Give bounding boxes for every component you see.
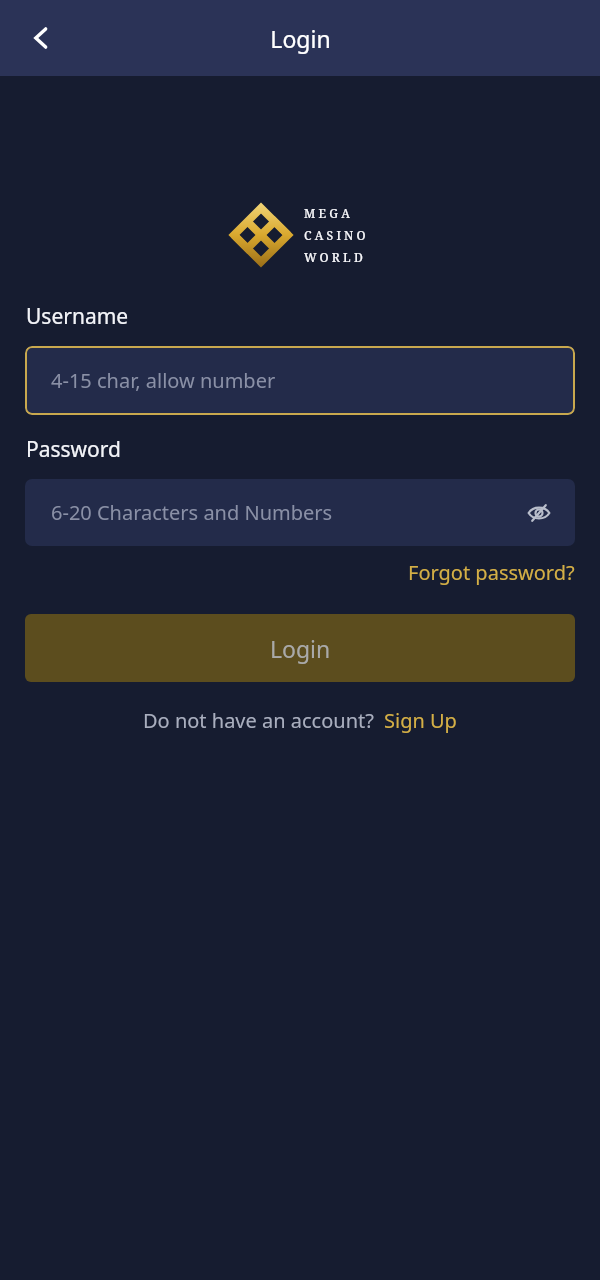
staticText: Forgot password? [408, 559, 575, 586]
button[interactable]: 6-20 Characters and Numbers [25, 479, 575, 546]
staticText: Username [26, 302, 129, 331]
button[interactable]: Sign Up [384, 707, 457, 734]
staticText: CASINO [304, 227, 369, 243]
staticText: Login [270, 23, 331, 54]
staticText: MEGA [304, 205, 354, 221]
staticText: Do not have an account? [143, 707, 374, 734]
staticText: Sign Up [384, 707, 457, 734]
button[interactable]: Back [18, 15, 64, 61]
staticText: Password [26, 435, 121, 464]
button[interactable]: Show password [521, 495, 557, 531]
button[interactable]: Login [25, 614, 575, 682]
staticText: WORLD [304, 249, 366, 265]
staticText: 6-20 Characters and Numbers [51, 499, 333, 526]
button[interactable]: 4-15 char, allow number [25, 346, 575, 415]
staticText: 4-15 char, allow number [51, 367, 276, 394]
staticText: Login [270, 633, 331, 664]
button[interactable]: Forgot password? [408, 559, 575, 586]
